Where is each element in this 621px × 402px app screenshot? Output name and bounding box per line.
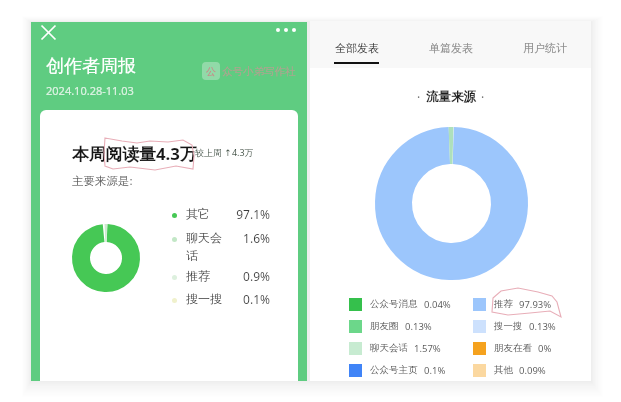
button[interactable]: 朋友在看 [473,337,593,359]
staticText: 聊天会话 [186,230,226,264]
staticText: 主要来源是: [72,173,133,189]
staticText: 1.57% [414,342,441,355]
button[interactable]: 聊天会话 [349,337,469,359]
staticText: 0.1% [234,291,270,307]
staticText: 0.09% [519,364,546,377]
staticText: 流量来源 [426,89,476,105]
button[interactable]: 单篇发表 [403,21,497,68]
staticText: 97.93% [519,298,552,311]
staticText: 搜一搜 [494,320,523,332]
staticText: · [417,89,421,105]
button[interactable]: 朋友圈 [349,315,469,337]
staticText: 公众号消息 [370,298,418,310]
staticText: 搜一搜 [186,291,226,306]
button[interactable]: More options [273,17,299,43]
staticText: 众号小弟写作社 [222,65,296,78]
staticText: 聊天会话 [370,342,408,354]
button[interactable]: 推荐 [172,268,284,291]
staticText: 较上周 ↑4.3万 [195,146,254,158]
staticText: 公众号主页 [370,364,418,376]
button[interactable]: 全部发表 [310,21,403,68]
button[interactable]: 推荐 [473,293,593,315]
staticText: 其它 [186,206,226,221]
button[interactable]: 公众号主页 [349,359,469,381]
staticText: 创作者周报 [46,55,136,78]
staticText: 用户统计 [523,41,567,55]
staticText: 推荐 [186,268,226,283]
button[interactable]: Close [35,19,61,45]
staticText: 0% [538,342,552,355]
staticText: 0.13% [529,320,556,333]
staticText: 全部发表 [335,41,379,55]
staticText: · [481,89,485,105]
staticText: 单篇发表 [429,41,473,55]
button[interactable]: 搜一搜 [473,315,593,337]
staticText: 朋友圈 [370,320,399,332]
button[interactable]: 搜一搜 [172,291,284,314]
staticText: 公 [206,65,216,78]
button[interactable]: 用户统计 [497,21,591,68]
staticText: 朋友在看 [494,342,532,354]
button[interactable]: 其它 [172,206,284,230]
staticText: 1.6% [234,230,270,246]
staticText: 2024.10.28-11.03 [46,83,134,98]
staticText: 0.1% [424,364,446,377]
staticText: 其他 [494,364,513,376]
button[interactable]: 公众号消息 [349,293,469,315]
staticText: 0.13% [405,320,432,333]
staticText: 推荐 [494,298,513,310]
button[interactable]: 其他 [473,359,593,381]
staticText: 0.04% [424,298,451,311]
staticText: 97.1% [234,206,270,222]
staticText: 本周阅读量4.3万 [72,142,197,165]
button[interactable]: 聊天会话 [172,230,284,268]
staticText: 0.9% [234,268,270,284]
